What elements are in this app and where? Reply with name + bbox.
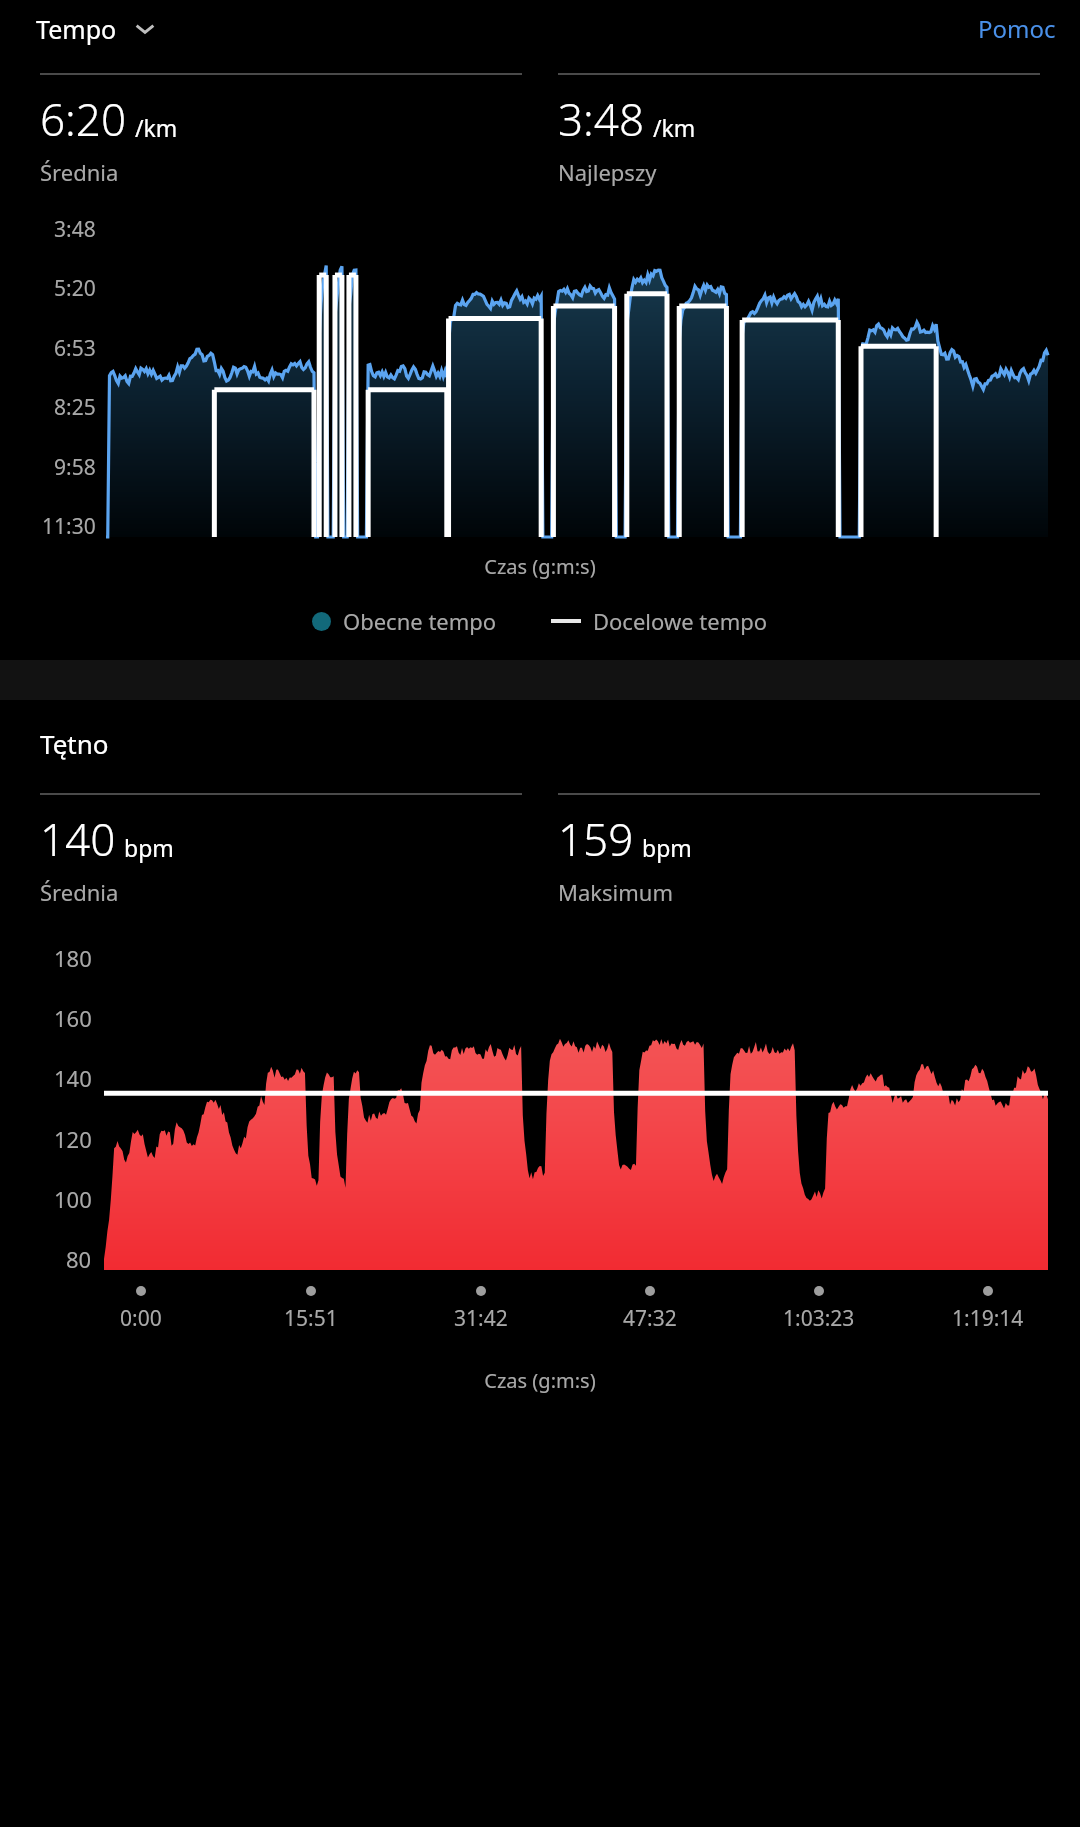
staticText: 159: [558, 809, 634, 869]
staticText: /km: [135, 112, 178, 143]
staticText: 1:03:23: [783, 1304, 855, 1333]
staticText: 15:51: [284, 1304, 338, 1333]
staticText: bpm: [642, 832, 692, 863]
staticText: /km: [653, 112, 696, 143]
staticText: 80: [66, 1244, 92, 1274]
staticText: 1:19:14: [952, 1304, 1024, 1333]
staticText: 140: [40, 809, 116, 869]
staticText: 9:58: [54, 453, 96, 482]
button[interactable]: Docelowe tempo: [547, 602, 772, 640]
button[interactable]: Pomoc: [968, 4, 1066, 53]
staticText: 31:42: [454, 1304, 508, 1333]
staticText: Najlepszy: [558, 157, 657, 187]
staticText: 0:00: [120, 1304, 162, 1333]
staticText: Docelowe tempo: [593, 606, 768, 636]
staticText: Średnia: [40, 877, 119, 907]
staticText: Obecne tempo: [343, 606, 497, 636]
staticText: 47:32: [623, 1304, 677, 1333]
staticText: 3:48: [558, 89, 645, 149]
button[interactable]: Obecne tempo: [308, 602, 501, 640]
staticText: 180: [54, 943, 92, 973]
staticText: 100: [54, 1184, 92, 1214]
other: Rozwiń: [133, 17, 157, 41]
staticText: Maksimum: [558, 877, 673, 907]
staticText: 6:20: [40, 89, 127, 149]
staticText: Czas (g:m:s): [0, 553, 1080, 580]
staticText: 120: [54, 1124, 92, 1154]
staticText: Średnia: [40, 157, 119, 187]
staticText: 140: [54, 1063, 92, 1093]
staticText: 160: [54, 1003, 92, 1033]
staticText: Tętno: [40, 726, 109, 761]
button[interactable]: Tempo: [14, 6, 165, 52]
staticText: 11:30: [42, 512, 96, 541]
staticText: Tempo: [36, 12, 117, 46]
staticText: 3:48: [54, 215, 96, 244]
staticText: Pomoc: [978, 12, 1056, 45]
staticText: 8:25: [54, 393, 96, 422]
staticText: bpm: [124, 832, 174, 863]
staticText: 5:20: [54, 274, 96, 303]
staticText: 6:53: [54, 334, 96, 363]
staticText: Czas (g:m:s): [0, 1367, 1080, 1394]
